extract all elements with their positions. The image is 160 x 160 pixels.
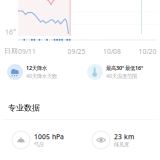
staticText: 09/25 <box>67 47 85 56</box>
staticText: 气压 <box>34 141 44 148</box>
staticText: 专业数据 <box>8 103 40 113</box>
staticText: 12天降水 <box>26 64 47 71</box>
staticText: 23 km <box>114 132 134 141</box>
staticText: 1005 hPa <box>34 132 64 141</box>
staticText: 10/08 <box>103 47 121 56</box>
staticText: 日期 <box>4 47 18 55</box>
staticText: 10/20 <box>138 47 156 56</box>
staticText: 最高30° 最低16° <box>106 64 143 71</box>
button[interactable]: 1005 hPa <box>0 128 80 152</box>
button[interactable]: 23 km <box>80 128 160 152</box>
button[interactable]: 12天降水 <box>0 60 80 84</box>
staticText: 能见度 <box>114 141 129 148</box>
staticText: 16° <box>5 27 16 36</box>
staticText: 40天降水天数 <box>26 72 57 80</box>
staticText: 40天温度范围 <box>106 72 137 80</box>
button[interactable]: 最高30° 最低16° <box>80 60 160 84</box>
staticText: 09/11 <box>18 47 36 56</box>
